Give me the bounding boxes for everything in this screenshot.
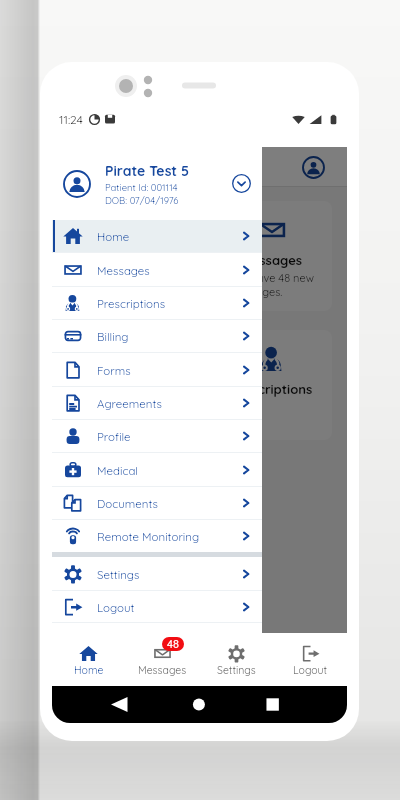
staticText: Prescriptions	[91, 381, 173, 397]
button[interactable]: Documents	[52, 487, 262, 519]
staticText: 11:24	[59, 112, 83, 127]
staticText: Settings	[97, 567, 140, 581]
button[interactable]: Prescriptions	[52, 287, 262, 319]
staticText: 48	[167, 637, 179, 651]
button[interactable]: Settings	[52, 557, 262, 590]
button[interactable]: Prescriptions	[67, 330, 192, 440]
button[interactable]: Agreements	[52, 387, 262, 419]
staticText: Prescriptions	[97, 296, 166, 310]
button[interactable]: Profile	[52, 420, 262, 452]
staticText: You have 48 new messages.	[89, 271, 174, 299]
button[interactable]: Forms	[52, 353, 262, 386]
button[interactable]: Home	[52, 633, 125, 686]
staticText: Messages	[241, 252, 303, 268]
button[interactable]: Messages	[207, 201, 332, 311]
staticText: Prescriptions	[231, 381, 313, 397]
staticText: You have 48 new messages.	[229, 271, 314, 299]
button[interactable]: 48	[125, 633, 199, 686]
button[interactable]: Logout	[273, 633, 347, 686]
button[interactable]: Account	[300, 154, 326, 180]
staticText: Pirate Test 5	[105, 162, 190, 180]
button[interactable]: Billing	[52, 320, 262, 352]
staticText: Messages	[101, 252, 163, 268]
staticText: Settings	[217, 663, 256, 676]
button[interactable]: Logout	[52, 591, 262, 622]
button[interactable]: Messages	[67, 201, 192, 311]
staticText: Forms	[97, 363, 131, 377]
staticText: Logout	[97, 600, 135, 614]
staticText: Patient Id: 001114	[105, 181, 178, 193]
button[interactable]: Home	[52, 220, 262, 252]
staticText: Agreements	[97, 396, 162, 410]
staticText: DOB: 07/04/1976	[105, 194, 179, 206]
staticText: Home	[97, 229, 130, 243]
staticText: Logout	[293, 663, 328, 676]
staticText: Messages	[97, 263, 150, 277]
staticText: Billing	[97, 329, 129, 343]
button[interactable]: Expand	[232, 174, 251, 193]
staticText: Remote Monitoring	[97, 529, 200, 543]
staticText: Messages	[138, 663, 187, 676]
button[interactable]: Medical	[52, 453, 262, 486]
button[interactable]: Messages	[52, 253, 262, 286]
staticText: Documents	[97, 496, 158, 510]
staticText: Medical	[97, 463, 139, 477]
button[interactable]: Prescriptions	[207, 330, 332, 440]
staticText: Home	[74, 663, 104, 676]
staticText: Profile	[97, 429, 131, 443]
button[interactable]: Settings	[199, 633, 273, 686]
button[interactable]: Remote Monitoring	[52, 520, 262, 552]
